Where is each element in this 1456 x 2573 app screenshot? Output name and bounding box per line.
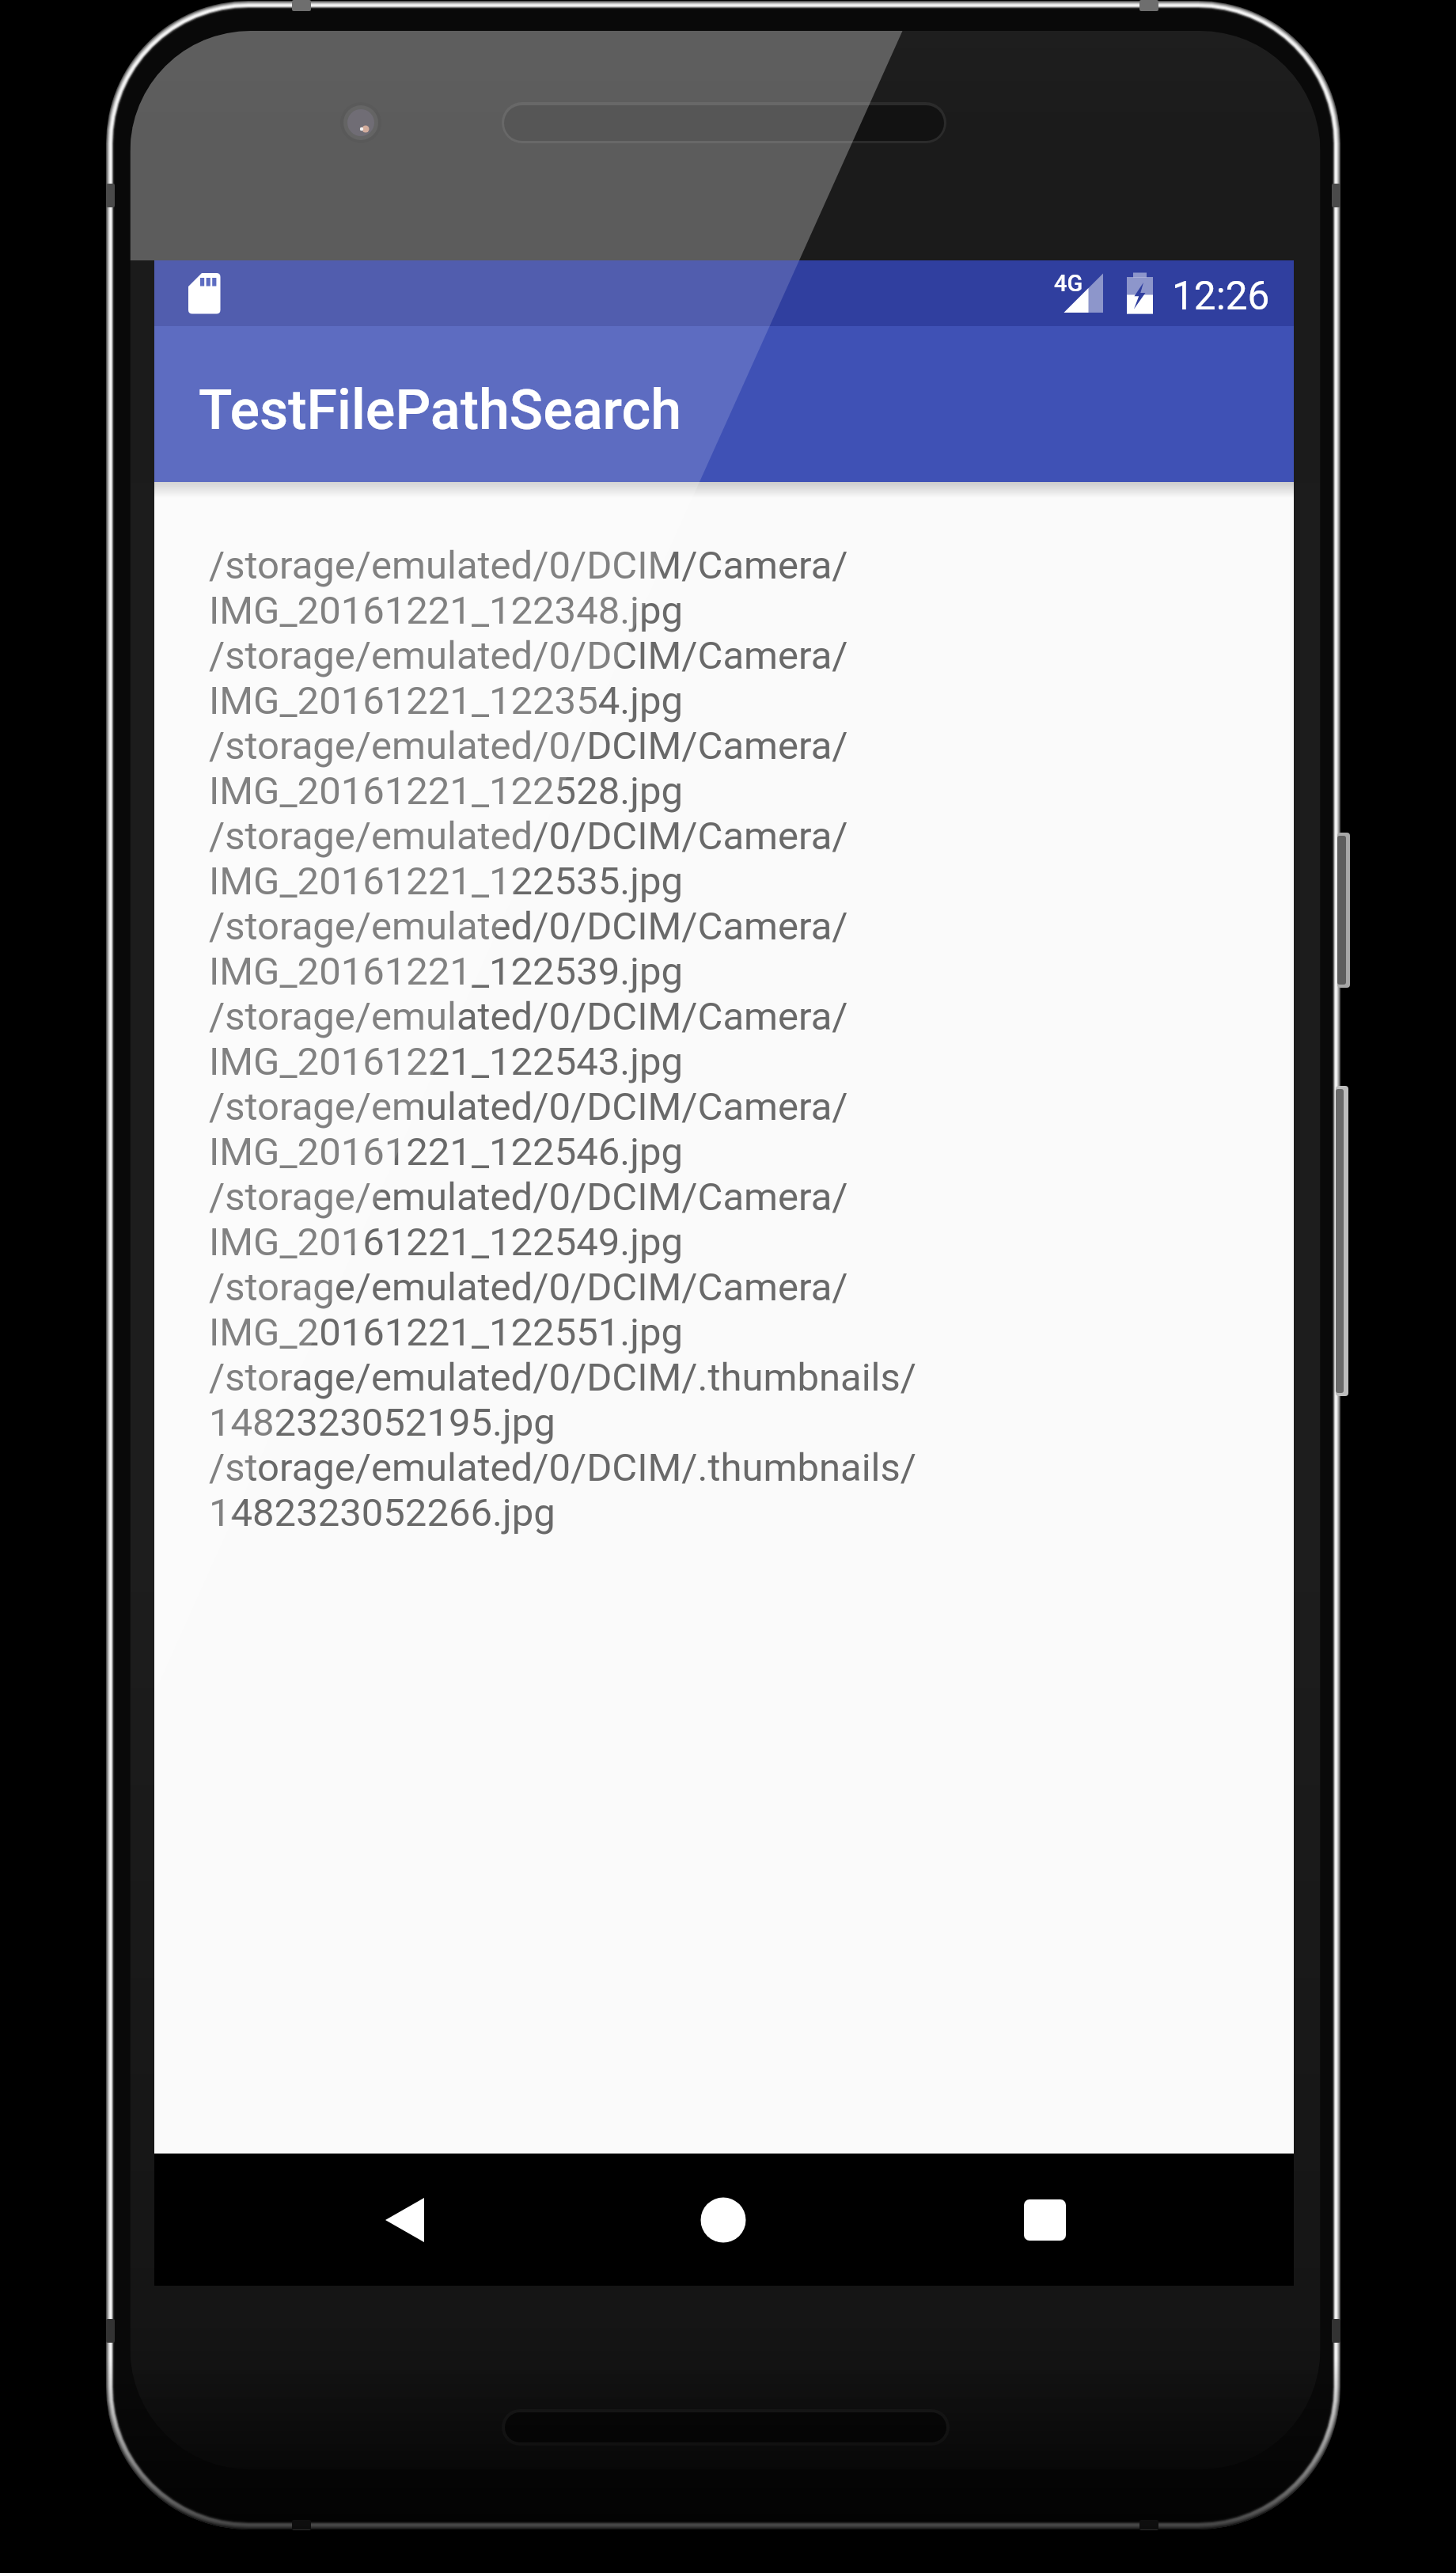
button[interactable]: File path list — [154, 482, 1294, 2154]
button[interactable]: Recent apps — [914, 2154, 1294, 2286]
button[interactable]: TestFilePathSearch — [154, 326, 1294, 482]
button[interactable]: Home — [534, 2154, 914, 2286]
button[interactable]: Back — [154, 2154, 534, 2286]
